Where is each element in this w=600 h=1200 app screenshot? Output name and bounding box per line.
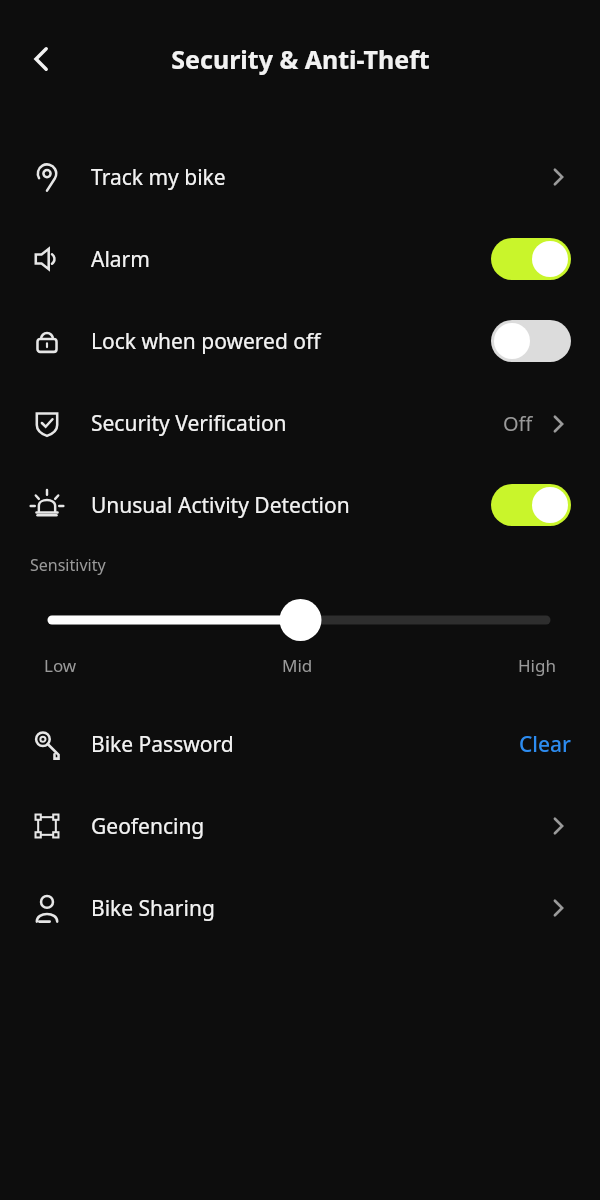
button[interactable]: Off (491, 320, 571, 362)
staticText: Clear (519, 730, 571, 759)
staticText: Geofencing (91, 812, 205, 841)
button[interactable]: Back (14, 31, 70, 87)
staticText: Track my bike (91, 163, 226, 192)
staticText: Bike Sharing (91, 894, 215, 923)
button[interactable]: Security Verification (0, 382, 600, 464)
button[interactable]: Alarm (0, 218, 600, 300)
staticText: Security Verification (91, 409, 287, 438)
staticText: Alarm (91, 245, 150, 274)
button[interactable]: Lock when powered off (0, 300, 600, 382)
button[interactable]: Track my bike (0, 136, 600, 218)
staticText: Bike Password (91, 730, 234, 759)
staticText: Low (44, 654, 77, 677)
button[interactable]: Bike Password (0, 703, 600, 785)
staticText: High (518, 654, 556, 677)
staticText: Unusual Activity Detection (91, 491, 350, 520)
staticText: Lock when powered off (91, 327, 321, 356)
button[interactable]: Bike Sharing (0, 867, 600, 949)
staticText: Off (503, 410, 533, 437)
button[interactable]: Unusual Activity Detection (0, 464, 600, 546)
button[interactable]: Geofencing (0, 785, 600, 867)
staticText: Security & Anti-Theft (171, 42, 430, 76)
button[interactable]: On (491, 238, 571, 280)
button[interactable] (0, 598, 600, 642)
staticText: Sensitivity (30, 554, 106, 576)
staticText: Mid (282, 654, 313, 677)
button[interactable]: On (491, 484, 571, 526)
